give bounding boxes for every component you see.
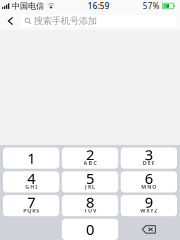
button[interactable]: 1: [3, 147, 59, 169]
staticText: 8: [86, 192, 94, 212]
button[interactable]: 6: [121, 171, 177, 192]
staticText: G H I: [25, 183, 37, 190]
staticText: 中国电信: [12, 1, 44, 11]
staticText: 1: [27, 148, 35, 168]
staticText: 3: [145, 145, 153, 164]
staticText: 0: [86, 220, 94, 239]
staticText: A B C: [83, 159, 96, 166]
staticText: M N O: [141, 183, 156, 190]
button[interactable]: 2: [62, 147, 118, 169]
staticText: T U V: [84, 207, 96, 214]
button[interactable]: 0: [62, 219, 118, 240]
staticText: W X Y Z: [140, 207, 157, 214]
button[interactable]: Delete: [121, 219, 177, 240]
staticText: 搜索手机号添加: [34, 15, 97, 27]
staticText: 5: [86, 168, 94, 188]
staticText: 2: [86, 145, 94, 164]
staticText: 9: [145, 192, 153, 212]
staticText: 6: [145, 168, 153, 188]
staticText: 16:59: [88, 1, 110, 11]
staticText: D E F: [143, 159, 155, 166]
button[interactable]: 9: [121, 195, 177, 216]
staticText: 7: [27, 192, 35, 212]
staticText: J K L: [85, 183, 95, 190]
staticText: 57%: [143, 1, 160, 11]
button[interactable]: 5: [62, 171, 118, 192]
staticText: 4: [27, 168, 35, 188]
button[interactable]: 4: [3, 171, 59, 192]
button[interactable]: 7: [3, 195, 59, 216]
staticText: P Q R S: [23, 207, 39, 214]
button[interactable]: 3: [121, 147, 177, 169]
button[interactable]: 搜索手机号添加: [21, 15, 176, 27]
button[interactable]: 8: [62, 195, 118, 216]
button[interactable]: Back: [0, 13, 21, 29]
